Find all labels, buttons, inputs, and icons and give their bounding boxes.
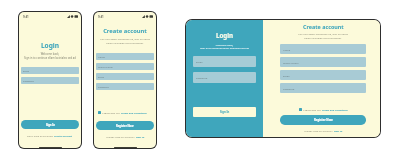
staticText: Register Now	[314, 118, 333, 122]
button[interactable]: Email	[193, 56, 256, 67]
staticText: Nec nihil affert partiendo ne, quo no li…	[99, 37, 151, 45]
staticText: Select School	[98, 65, 113, 68]
staticText: Password	[98, 85, 109, 88]
staticText: Password	[23, 79, 34, 82]
button[interactable]: Sign In	[193, 107, 256, 117]
staticText: Email	[23, 69, 30, 72]
staticText: Password	[196, 76, 208, 79]
button[interactable]: Select School	[96, 63, 154, 70]
staticText: Email	[283, 74, 290, 77]
staticText: Don't have an account?	[27, 134, 54, 137]
staticText: I agree with our	[102, 111, 121, 114]
staticText: 9:41	[23, 15, 29, 19]
staticText: Nec nihil affert partiendo ne, quo no li…	[295, 32, 351, 40]
staticText: Name	[283, 48, 291, 51]
button[interactable]: Name	[96, 53, 154, 60]
staticText: Login	[216, 31, 234, 39]
button[interactable]: Register Now	[280, 115, 366, 125]
button[interactable]: Sign In	[136, 135, 145, 138]
staticText: Sign In	[220, 110, 230, 114]
staticText: Select School	[283, 61, 299, 64]
staticText: Already have an account?	[106, 135, 136, 138]
staticText: Sign In	[46, 123, 55, 127]
staticText: Sign in to continue ellam lacinialeo sed…	[193, 46, 256, 49]
button[interactable]: Password	[193, 72, 256, 83]
staticText: Sign in to continue ellam lacinialeo sed…	[21, 56, 79, 60]
staticText: I agree with our	[303, 108, 322, 111]
button[interactable]: Agree checkbox	[299, 108, 302, 111]
button[interactable]: Email	[21, 67, 79, 74]
button[interactable]: Register Now	[96, 121, 154, 130]
staticText: Already have an account?	[304, 129, 334, 132]
staticText: Welcome back,	[19, 52, 81, 56]
staticText: Create account	[303, 23, 344, 30]
staticText: 9:41	[98, 15, 104, 19]
button[interactable]: Sign In	[21, 120, 79, 129]
button[interactable]: Password	[96, 83, 154, 90]
button[interactable]: Select School	[280, 57, 366, 67]
staticText: Password	[283, 87, 295, 90]
staticText: Email	[98, 75, 105, 78]
button[interactable]: Email	[96, 73, 154, 80]
button[interactable]: Password	[280, 83, 366, 93]
staticText: Register Now	[116, 124, 134, 128]
button[interactable]: Create account	[54, 134, 73, 137]
staticText: Name	[98, 55, 105, 58]
staticText: Login	[19, 41, 81, 50]
button[interactable]: Sign In	[334, 129, 343, 132]
staticText: Email	[196, 60, 203, 63]
staticText: Create account	[94, 27, 156, 35]
button[interactable]: Agree checkbox	[98, 111, 101, 114]
button[interactable]: Password	[21, 77, 79, 84]
button[interactable]: Terms and Conditions	[322, 108, 348, 111]
staticText: Welcome back,	[193, 43, 256, 46]
button[interactable]: Terms and Conditions	[121, 111, 147, 114]
